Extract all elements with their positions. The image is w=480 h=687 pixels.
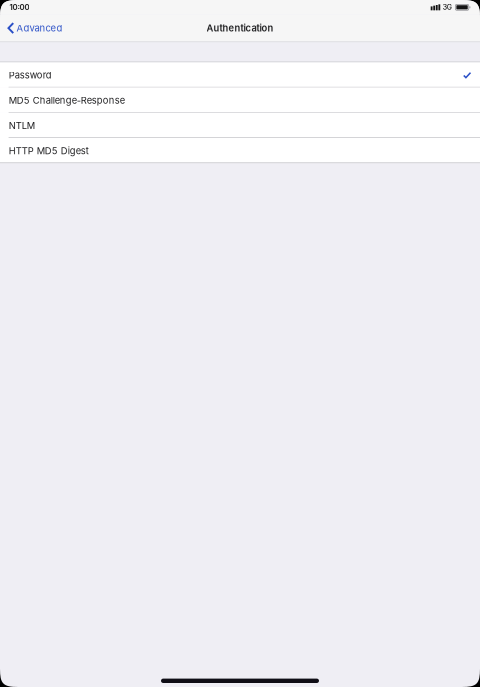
button[interactable]: Password xyxy=(0,62,480,88)
button[interactable]: NTLM xyxy=(0,113,480,138)
staticText: Authentication xyxy=(206,22,273,34)
staticText: 10:00 xyxy=(9,3,29,12)
button[interactable]: HTTP MD5 Digest xyxy=(0,138,480,163)
button[interactable]: MD5 Challenge-Response xyxy=(0,88,480,113)
staticText: NTLM xyxy=(9,120,35,131)
staticText: MD5 Challenge-Response xyxy=(9,95,125,106)
staticText: Password xyxy=(9,69,52,81)
button[interactable]: Advanced xyxy=(0,15,69,42)
staticText: Advanced xyxy=(16,22,62,34)
staticText: 3G xyxy=(443,3,452,11)
staticText: HTTP MD5 Digest xyxy=(9,145,89,156)
